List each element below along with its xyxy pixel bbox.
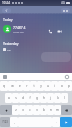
staticText: Yesterday [3, 41, 19, 45]
staticText: 10:24 [2, 1, 11, 5]
button[interactable]: Symbols [0, 117, 10, 127]
button[interactable]: r [23, 81, 30, 91]
button[interactable]: s [12, 93, 19, 103]
staticText: t [33, 84, 35, 88]
staticText: q [3, 84, 5, 88]
button[interactable]: y [37, 81, 44, 91]
staticText: 4G [61, 1, 65, 5]
button[interactable]: e [16, 81, 23, 91]
staticText: v [36, 108, 38, 112]
button[interactable]: Contact avatar [3, 25, 11, 33]
button[interactable] [41, 52, 71, 62]
button[interactable]: f [26, 93, 33, 103]
staticText: k [57, 96, 59, 100]
button[interactable]: Add attachment [3, 75, 7, 79]
button[interactable]: z [12, 105, 19, 115]
staticText: call [7, 48, 11, 51]
staticText: y [40, 84, 42, 88]
button[interactable]: u [44, 81, 51, 91]
button[interactable]: More options [61, 8, 70, 13]
staticText: e [19, 84, 21, 88]
staticText: ?123 [2, 120, 8, 124]
button[interactable]: Emoji [65, 75, 69, 79]
staticText: . [56, 120, 57, 124]
staticText: u [47, 84, 49, 88]
button[interactable]: x [19, 105, 26, 115]
button[interactable]: t [30, 81, 37, 91]
staticText: g [36, 96, 38, 100]
staticText: x [22, 108, 24, 112]
button[interactable]: p [65, 81, 72, 91]
staticText: m [56, 108, 59, 112]
button[interactable]: Back [2, 8, 11, 13]
button[interactable]: h [40, 93, 47, 103]
staticText: n [50, 108, 52, 112]
staticText: b [43, 108, 45, 112]
staticText: j [50, 96, 51, 100]
button[interactable]: m [54, 105, 61, 115]
staticText: 10:24 AM [13, 30, 24, 33]
button[interactable]: q [0, 81, 8, 91]
button[interactable]: Send [60, 117, 72, 127]
staticText: , [14, 120, 15, 124]
staticText: r [26, 84, 28, 88]
staticText: 77487 4 [13, 25, 26, 30]
button[interactable]: Backspace [61, 105, 72, 115]
button[interactable]: o [58, 81, 65, 91]
button[interactable]: d [19, 93, 26, 103]
staticText: z [15, 108, 17, 112]
staticText: s [15, 96, 17, 100]
button[interactable]: Video call [56, 28, 62, 34]
button[interactable]: j [47, 93, 54, 103]
button[interactable]: l [61, 93, 68, 103]
staticText: f [29, 96, 31, 100]
staticText: Today [3, 17, 13, 22]
button[interactable]: Shift [0, 105, 12, 115]
button[interactable]: v [33, 105, 40, 115]
button[interactable]: n [47, 105, 54, 115]
staticText: p [68, 84, 70, 88]
staticText: l [64, 96, 65, 100]
staticText: d [22, 96, 24, 100]
button[interactable]: k [54, 93, 61, 103]
button[interactable]: b [40, 105, 47, 115]
button[interactable]: i [51, 81, 58, 91]
staticText: h [43, 96, 45, 100]
button[interactable]: Period [52, 117, 60, 127]
staticText: c [29, 108, 31, 112]
staticText: o [61, 84, 63, 88]
button[interactable]: g [33, 93, 40, 103]
staticText: a [8, 96, 10, 100]
button[interactable]: Call [47, 28, 53, 34]
button[interactable]: c [26, 105, 33, 115]
button[interactable]: Comma [10, 117, 18, 127]
staticText: w [11, 84, 14, 88]
button[interactable]: w [8, 81, 16, 91]
staticText: i [54, 84, 55, 88]
button[interactable]: a [5, 93, 12, 103]
